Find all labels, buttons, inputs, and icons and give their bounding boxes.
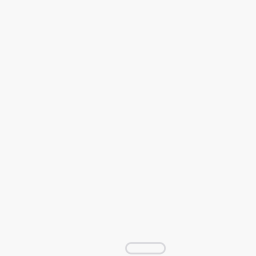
button[interactable]: Continue xyxy=(126,243,165,253)
